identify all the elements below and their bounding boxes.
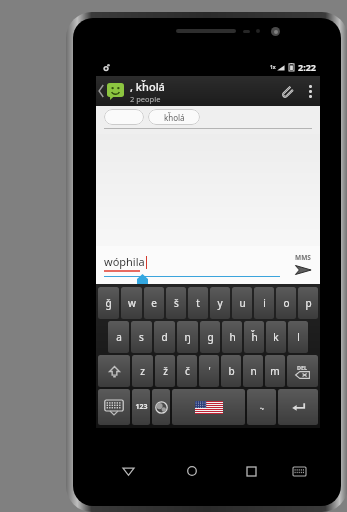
staticText: ǧ <box>105 296 112 310</box>
button[interactable]: Recipient <box>104 109 144 125</box>
staticText: č <box>185 364 190 378</box>
button[interactable]: u <box>232 287 252 319</box>
button[interactable]: o <box>276 287 296 319</box>
staticText: 2:22 <box>298 61 316 73</box>
button[interactable]: ., <box>247 389 276 425</box>
button[interactable]: Send MMS <box>292 253 314 277</box>
staticText: a <box>116 330 122 344</box>
button[interactable]: a <box>108 321 129 353</box>
button[interactable]: h <box>222 321 242 353</box>
staticText: MMS <box>295 253 311 262</box>
staticText: z <box>140 364 145 378</box>
staticText: o <box>283 296 290 310</box>
staticText: g <box>207 330 214 344</box>
staticText: 123 <box>135 402 148 412</box>
button[interactable]: ŋ <box>177 321 198 353</box>
button[interactable]: Home <box>160 458 224 484</box>
button[interactable]: Hide keyboard <box>98 389 130 425</box>
button[interactable]: , kȟolá <box>126 79 274 104</box>
staticText: h <box>229 330 236 344</box>
staticText: kȟolá <box>164 112 185 123</box>
button[interactable]: Back <box>96 458 160 484</box>
staticText: y <box>217 296 223 310</box>
button[interactable]: kȟolá <box>148 109 200 125</box>
button[interactable]: Shift <box>98 355 130 387</box>
staticText: u <box>239 296 246 310</box>
staticText: l <box>297 330 300 344</box>
button[interactable]: š <box>166 287 186 319</box>
button[interactable]: Switch keyboard <box>279 458 320 484</box>
button[interactable]: Back <box>96 76 126 106</box>
button[interactable]: m <box>265 355 285 387</box>
staticText: t <box>196 296 200 310</box>
button[interactable]: z <box>132 355 153 387</box>
button[interactable]: Delete <box>287 355 318 387</box>
staticText: ŋ <box>184 330 191 344</box>
button[interactable]: l <box>288 321 308 353</box>
button[interactable]: b <box>221 355 241 387</box>
button[interactable]: ž <box>155 355 175 387</box>
staticText: i <box>263 296 266 310</box>
staticText: e <box>151 296 157 310</box>
button[interactable]: Attach <box>274 76 300 106</box>
button[interactable]: Enter <box>278 389 318 425</box>
button[interactable]: ' <box>199 355 219 387</box>
button[interactable]: ȟ <box>244 321 264 353</box>
staticText: p <box>305 296 312 310</box>
staticText: wóphila <box>104 254 145 269</box>
button[interactable]: ǧ <box>98 287 119 319</box>
staticText: w <box>128 296 136 310</box>
button[interactable]: Space <box>172 389 245 425</box>
staticText: k <box>273 330 279 344</box>
staticText: DEL <box>297 364 308 371</box>
button[interactable]: e <box>144 287 164 319</box>
button[interactable]: i <box>254 287 274 319</box>
staticText: , kȟolá <box>130 79 165 94</box>
staticText: m <box>270 364 280 378</box>
staticText: s <box>139 330 144 344</box>
button[interactable]: y <box>210 287 230 319</box>
button[interactable]: d <box>154 321 175 353</box>
button[interactable]: Recents <box>224 458 279 484</box>
button[interactable]: č <box>177 355 197 387</box>
button[interactable]: s <box>131 321 152 353</box>
button[interactable]: Change language <box>152 389 170 425</box>
staticText: ' <box>208 364 211 378</box>
staticText: š <box>174 296 179 310</box>
staticText: ȟ <box>251 330 258 344</box>
staticText: d <box>161 330 168 344</box>
button[interactable]: More options <box>300 76 320 106</box>
staticText: n <box>250 364 257 378</box>
button[interactable]: 123 <box>132 389 150 425</box>
staticText: ž <box>163 364 168 378</box>
button[interactable]: w <box>121 287 142 319</box>
staticText: b <box>228 364 235 378</box>
staticText: 2 people <box>130 94 161 104</box>
button[interactable]: n <box>243 355 263 387</box>
button[interactable]: t <box>188 287 208 319</box>
button[interactable]: p <box>298 287 318 319</box>
staticText: ., <box>260 402 264 412</box>
staticText: 1x <box>270 64 276 71</box>
button[interactable]: g <box>200 321 220 353</box>
button[interactable]: k <box>266 321 286 353</box>
